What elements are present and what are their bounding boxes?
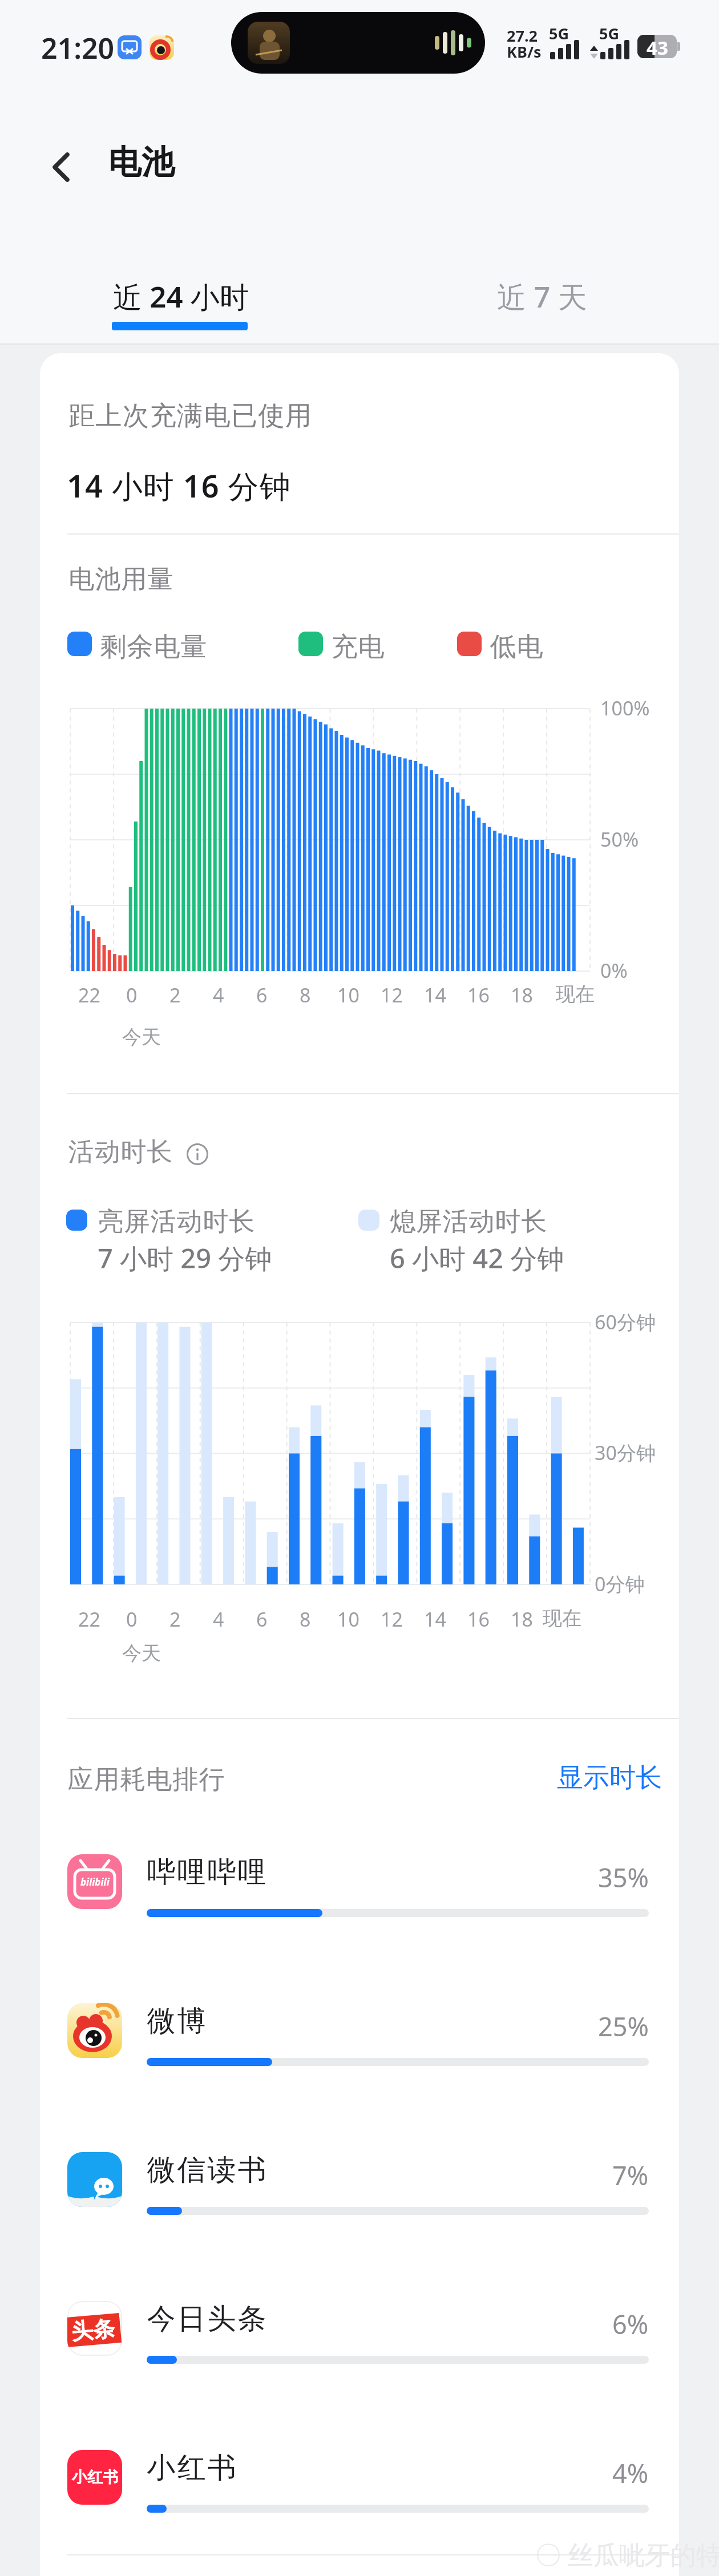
button[interactable]: 显示时长 bbox=[491, 1761, 662, 1794]
staticText: 14 bbox=[424, 982, 446, 1008]
staticText: 熄屏活动时长 bbox=[390, 1206, 547, 1238]
staticText: 35% bbox=[598, 1860, 649, 1895]
staticText: 现在 bbox=[543, 1606, 581, 1631]
staticText: 剩余电量 bbox=[100, 630, 207, 664]
staticText: 小红书 bbox=[146, 2450, 237, 2486]
staticText: bilibili bbox=[80, 1875, 110, 1888]
staticText: 43 bbox=[647, 35, 668, 58]
staticText: 4 bbox=[213, 982, 224, 1008]
button[interactable]: 微博 bbox=[67, 2003, 649, 2067]
staticText: 微博 bbox=[146, 2003, 207, 2039]
staticText: 7 小时 29 分钟 bbox=[98, 1240, 272, 1276]
staticText: 应用耗电排行 bbox=[67, 1764, 225, 1796]
staticText: 显示时长 bbox=[557, 1761, 662, 1794]
staticText: 8 bbox=[300, 982, 311, 1008]
staticText: 14 bbox=[424, 1606, 446, 1632]
staticText: 0 bbox=[126, 982, 138, 1008]
button[interactable]: 小红书 bbox=[67, 2450, 649, 2514]
staticText: 今天 bbox=[122, 1641, 161, 1665]
staticText: 60分钟 bbox=[595, 1309, 656, 1335]
button[interactable] bbox=[187, 1144, 208, 1164]
staticText: 亮屏活动时长 bbox=[98, 1206, 255, 1238]
staticText: 6 bbox=[256, 1606, 268, 1632]
staticText: 12 bbox=[381, 1606, 403, 1632]
staticText: 5G bbox=[549, 23, 569, 44]
button[interactable]: 微信读书 bbox=[67, 2152, 649, 2216]
staticText: 6 小时 42 分钟 bbox=[390, 1240, 564, 1276]
staticText: 小红书 bbox=[72, 2468, 118, 2487]
staticText: 微信读书 bbox=[146, 2152, 267, 2188]
staticText: 现在 bbox=[556, 982, 595, 1006]
staticText: 18 bbox=[511, 1606, 533, 1632]
staticText: 14 小时 16 分钟 bbox=[67, 464, 291, 507]
staticText: 30分钟 bbox=[595, 1439, 656, 1466]
staticText: 低电 bbox=[490, 630, 543, 664]
staticText: 16 bbox=[467, 982, 490, 1008]
staticText: 0分钟 bbox=[595, 1571, 645, 1597]
button[interactable]: bilibili bbox=[67, 1854, 649, 1918]
staticText: 头条 bbox=[70, 2315, 116, 2346]
staticText: 充电 bbox=[331, 630, 385, 664]
staticText: 6% bbox=[612, 2307, 649, 2342]
staticText: 距上次充满电已使用 bbox=[68, 399, 313, 432]
button[interactable]: 近 7 天 bbox=[468, 276, 616, 316]
staticText: 10 bbox=[337, 982, 359, 1008]
staticText: KB/s bbox=[507, 41, 542, 62]
staticText: 18 bbox=[511, 982, 533, 1008]
staticText: 近 7 天 bbox=[497, 276, 587, 316]
staticText: 8 bbox=[300, 1606, 311, 1632]
staticText: 今天 bbox=[122, 1025, 161, 1049]
staticText: 0% bbox=[600, 957, 628, 984]
staticText: 近 24 小时 bbox=[113, 276, 249, 316]
staticText: 〇 丝瓜呲牙的特曼 bbox=[535, 2537, 719, 2571]
staticText: 50% bbox=[600, 826, 639, 852]
staticText: 电池 bbox=[108, 141, 175, 183]
staticText: 今日头条 bbox=[146, 2301, 267, 2337]
button[interactable] bbox=[103, 274, 257, 331]
staticText: 电池用量 bbox=[68, 563, 173, 596]
staticText: 25% bbox=[598, 2009, 649, 2044]
staticText: 4% bbox=[612, 2456, 649, 2490]
staticText: 16 bbox=[467, 1606, 490, 1632]
staticText: 哔哩哔哩 bbox=[146, 1854, 267, 1890]
staticText: 10 bbox=[337, 1606, 359, 1632]
staticText: 22 bbox=[78, 1606, 100, 1632]
button[interactable] bbox=[52, 153, 70, 181]
staticText: 27.2 bbox=[507, 25, 538, 46]
staticText: 2 bbox=[169, 982, 181, 1008]
staticText: 0 bbox=[126, 1606, 138, 1632]
staticText: 2 bbox=[169, 1606, 181, 1632]
staticText: 22 bbox=[78, 982, 100, 1008]
staticText: 4 bbox=[213, 1606, 224, 1632]
staticText: 7% bbox=[612, 2158, 649, 2193]
button[interactable]: 头条 bbox=[67, 2301, 649, 2365]
staticText: 6 bbox=[256, 982, 268, 1008]
staticText: 活动时长 bbox=[68, 1136, 173, 1168]
staticText: 12 bbox=[381, 982, 403, 1008]
staticText: 100% bbox=[600, 695, 650, 721]
staticText: 5G bbox=[599, 23, 619, 44]
staticText: 21:20 bbox=[41, 29, 115, 67]
